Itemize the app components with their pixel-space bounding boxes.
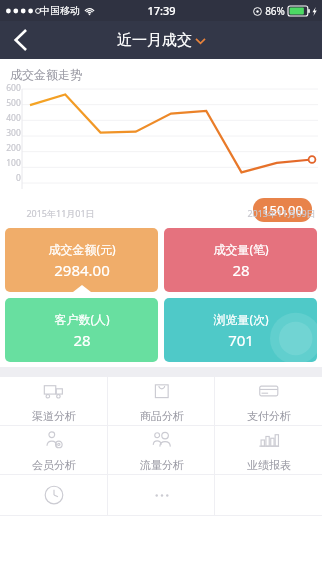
staticText: 商品分析 (140, 409, 184, 423)
staticText: 近一月成交 (117, 31, 192, 50)
staticText: 客户数(人) (54, 311, 110, 327)
button[interactable] (0, 475, 108, 515)
staticText: 150.00 (262, 201, 303, 219)
staticText: 0 (16, 172, 21, 184)
staticText: 业绩报表 (247, 458, 291, 472)
button[interactable]: 会员分析 (0, 426, 108, 474)
staticText: 成交量(笔) (213, 241, 269, 257)
staticText: 2984.00 (54, 260, 110, 280)
staticText: 28 (73, 330, 91, 350)
button[interactable]: Back (0, 21, 42, 59)
button[interactable]: 浏览量(次) (164, 298, 317, 362)
staticText: 400 (6, 112, 21, 124)
button[interactable]: 渠道分析 (0, 377, 108, 425)
staticText: 流量分析 (140, 458, 184, 472)
button[interactable]: 150.00 (262, 201, 303, 219)
staticText: 200 (6, 142, 21, 154)
button[interactable]: 近一月成交 (117, 31, 205, 50)
staticText: 2015年11月01日 (26, 207, 95, 219)
staticText: 成交金额走势 (10, 67, 82, 82)
button[interactable]: 业绩报表 (215, 426, 322, 474)
staticText: 28 (232, 260, 250, 280)
staticText: 86% (265, 4, 285, 18)
button[interactable]: 支付分析 (215, 377, 322, 425)
button[interactable]: 商品分析 (108, 377, 215, 425)
staticText: 17:39 (147, 3, 176, 18)
button[interactable]: 流量分析 (108, 426, 215, 474)
staticText: 中国移动 (40, 4, 80, 17)
staticText: 100 (6, 157, 21, 169)
staticText: 成交金额(元) (48, 241, 116, 257)
button[interactable]: 成交量(笔) (164, 228, 317, 292)
staticText: 300 (6, 127, 21, 139)
button[interactable]: 成交金额(元) (5, 228, 158, 292)
staticText: 浏览量(次) (213, 311, 269, 327)
staticText: 渠道分析 (32, 409, 76, 423)
button[interactable]: 客户数(人) (5, 298, 158, 362)
staticText: 600 (6, 82, 21, 94)
staticText: 支付分析 (247, 409, 291, 423)
staticText: 2015年11月09日 (247, 207, 316, 219)
staticText: 701 (228, 330, 254, 350)
staticText: 会员分析 (32, 458, 76, 472)
staticText: 500 (6, 97, 21, 109)
